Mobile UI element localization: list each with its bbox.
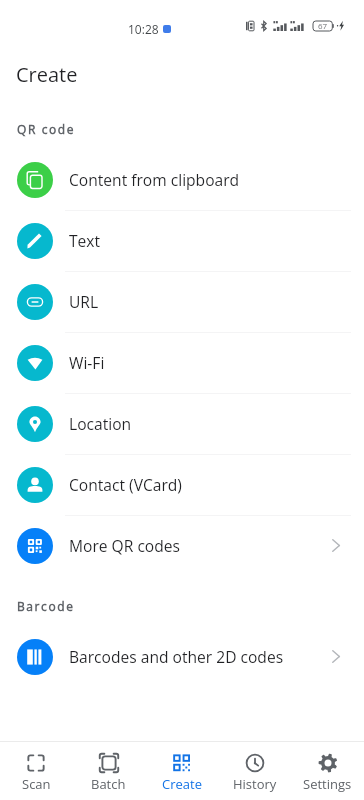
staticText: Create	[16, 61, 78, 88]
button[interactable]: Contact (VCard)	[0, 454, 364, 515]
button[interactable]: History	[218, 742, 291, 800]
staticText: Barcode	[17, 598, 75, 614]
staticText: URL	[69, 291, 99, 312]
staticText: QR code	[17, 121, 76, 137]
staticText: Settings	[303, 775, 352, 793]
staticText: Scan	[22, 775, 51, 793]
staticText: Create	[162, 775, 202, 793]
staticText: Location	[69, 413, 132, 434]
staticText: Barcodes and other 2D codes	[69, 646, 284, 667]
staticText: Content from clipboard	[69, 169, 240, 190]
button[interactable]: Content from clipboard	[0, 149, 364, 210]
button[interactable]: More QR codes	[0, 515, 364, 576]
staticText: Contact (VCard)	[69, 474, 182, 495]
button[interactable]: Barcodes and other 2D codes	[0, 626, 364, 687]
staticText: Wi-Fi	[69, 352, 105, 373]
button[interactable]: Location	[0, 393, 364, 454]
button[interactable]: Batch	[72, 742, 145, 800]
staticText: 10:28	[128, 21, 159, 37]
staticText: Batch	[91, 775, 126, 793]
button[interactable]: URL	[0, 271, 364, 332]
staticText: History	[233, 775, 277, 793]
button[interactable]: Scan	[0, 742, 72, 800]
button[interactable]: Settings	[291, 742, 364, 800]
staticText: Text	[69, 230, 101, 251]
button[interactable]: Wi-Fi	[0, 332, 364, 393]
staticText: 67	[318, 20, 328, 31]
button[interactable]: Create	[145, 742, 218, 800]
staticText: More QR codes	[69, 535, 180, 556]
button[interactable]: Text	[0, 210, 364, 271]
